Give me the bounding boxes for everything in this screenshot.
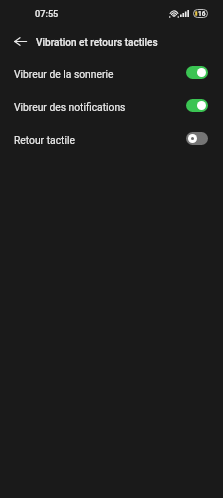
button[interactable]: Toggle on: [186, 66, 208, 79]
staticText: 07:55: [35, 8, 59, 19]
staticText: Vibreur des notifications: [14, 101, 186, 113]
button[interactable]: Retour tactile: [0, 122, 223, 155]
button[interactable]: Toggle on: [186, 99, 208, 112]
button[interactable]: Toggle off: [186, 132, 208, 145]
button[interactable]: Vibreur des notifications: [0, 89, 223, 122]
staticText: 16: [198, 10, 206, 18]
staticText: Retour tactile: [14, 134, 186, 146]
staticText: Vibration et retours tactiles: [36, 37, 158, 49]
button[interactable]: Vibreur de la sonnerie: [0, 56, 223, 89]
staticText: Vibreur de la sonnerie: [14, 68, 186, 80]
button[interactable]: Back: [5, 26, 35, 56]
